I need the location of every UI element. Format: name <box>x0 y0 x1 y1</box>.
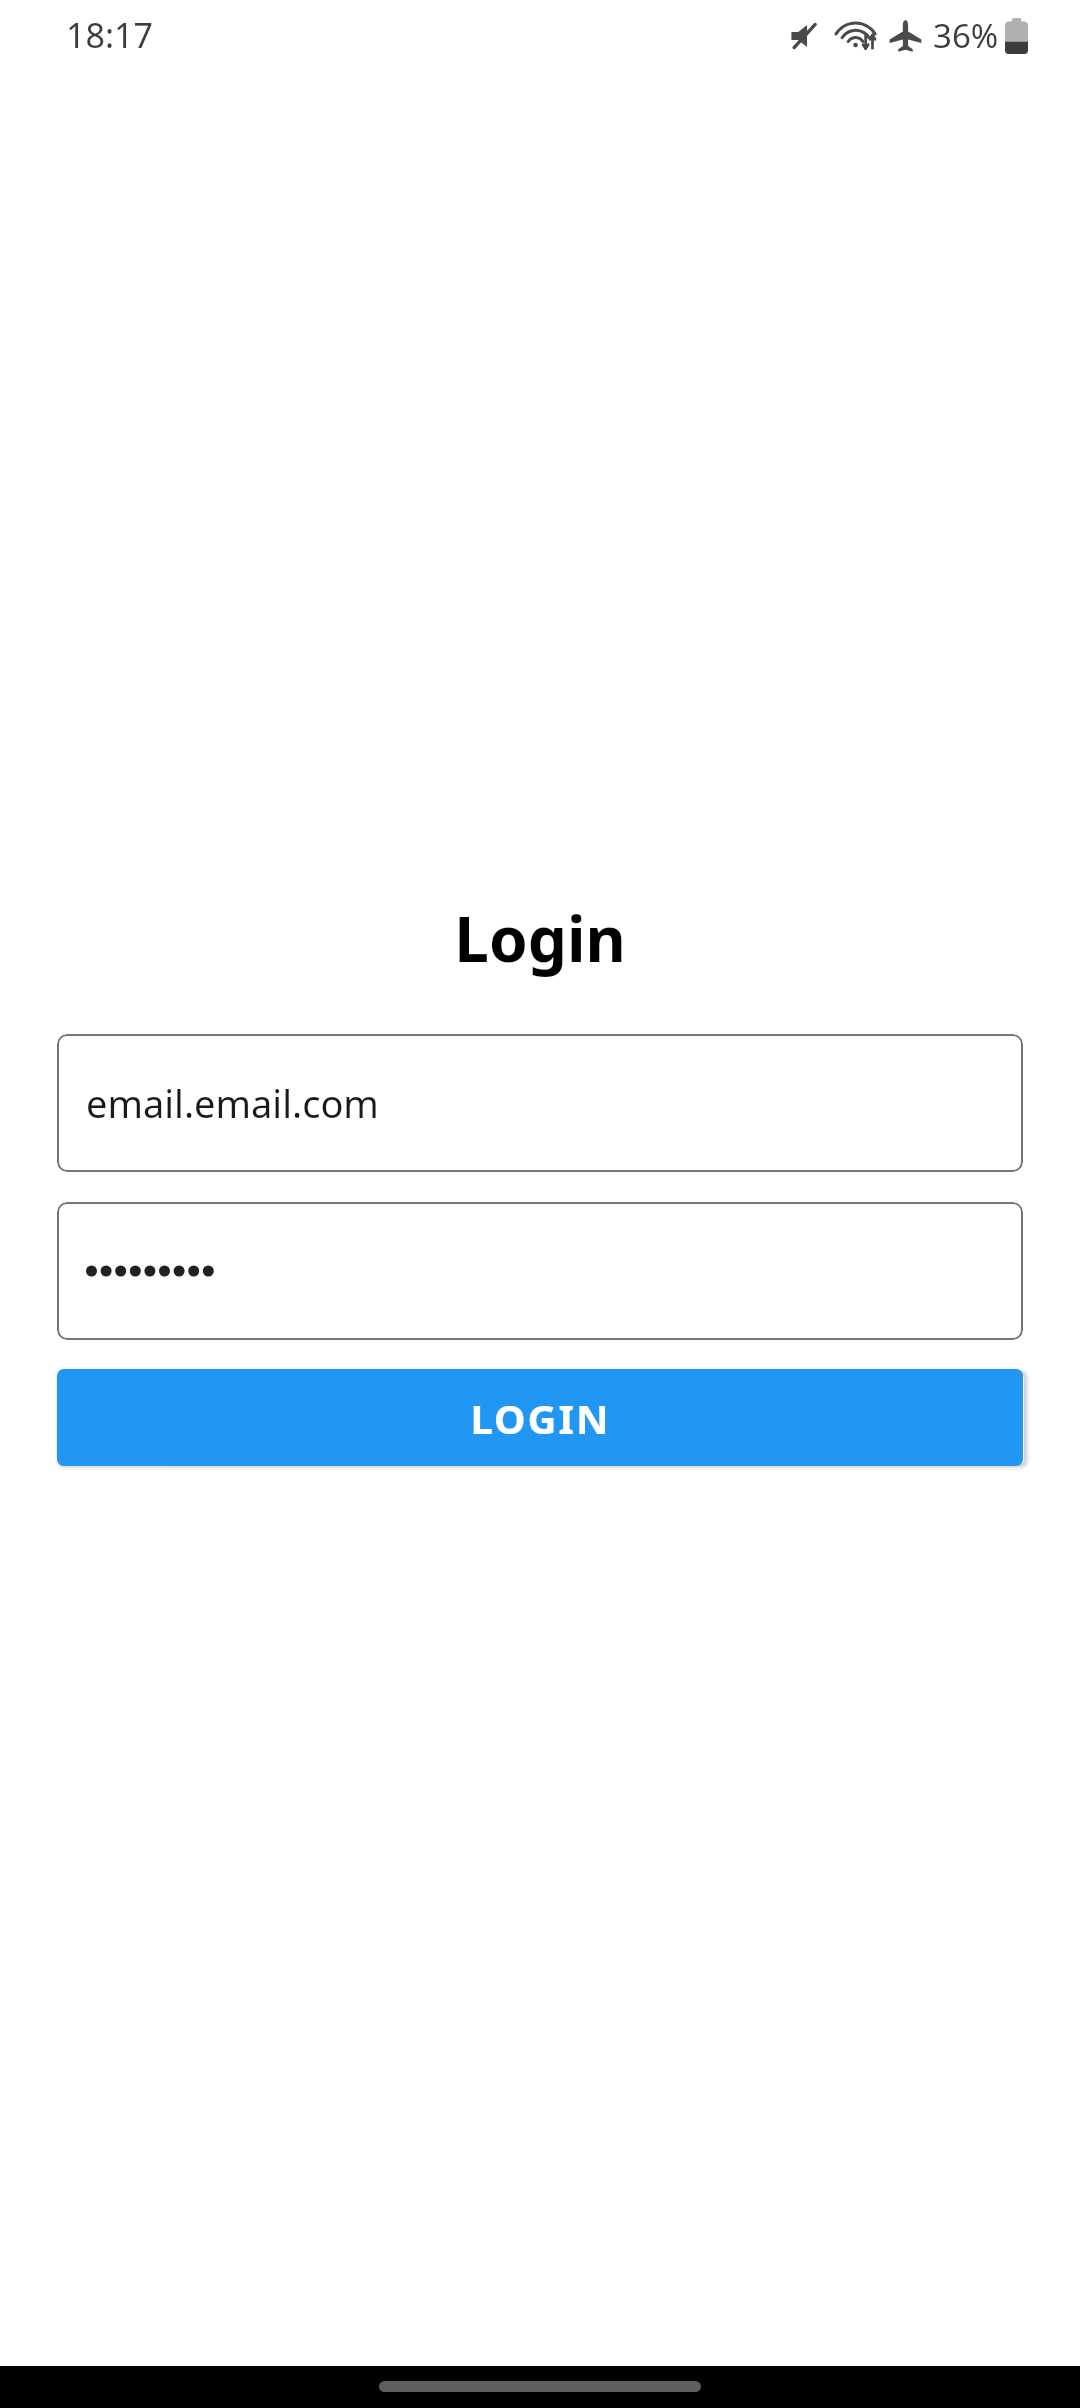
staticText: Login <box>454 896 626 980</box>
staticText: LOGIN <box>470 1391 611 1445</box>
button[interactable]: Home gesture handle <box>379 2381 701 2392</box>
button[interactable]: LOGIN <box>57 1369 1023 1466</box>
staticText: 18:17 <box>66 12 153 58</box>
button[interactable]: email.email.com <box>57 1034 1023 1172</box>
button[interactable]: Password <box>57 1202 1023 1340</box>
staticText: email.email.com <box>86 1077 379 1129</box>
staticText: 36% <box>933 13 999 58</box>
